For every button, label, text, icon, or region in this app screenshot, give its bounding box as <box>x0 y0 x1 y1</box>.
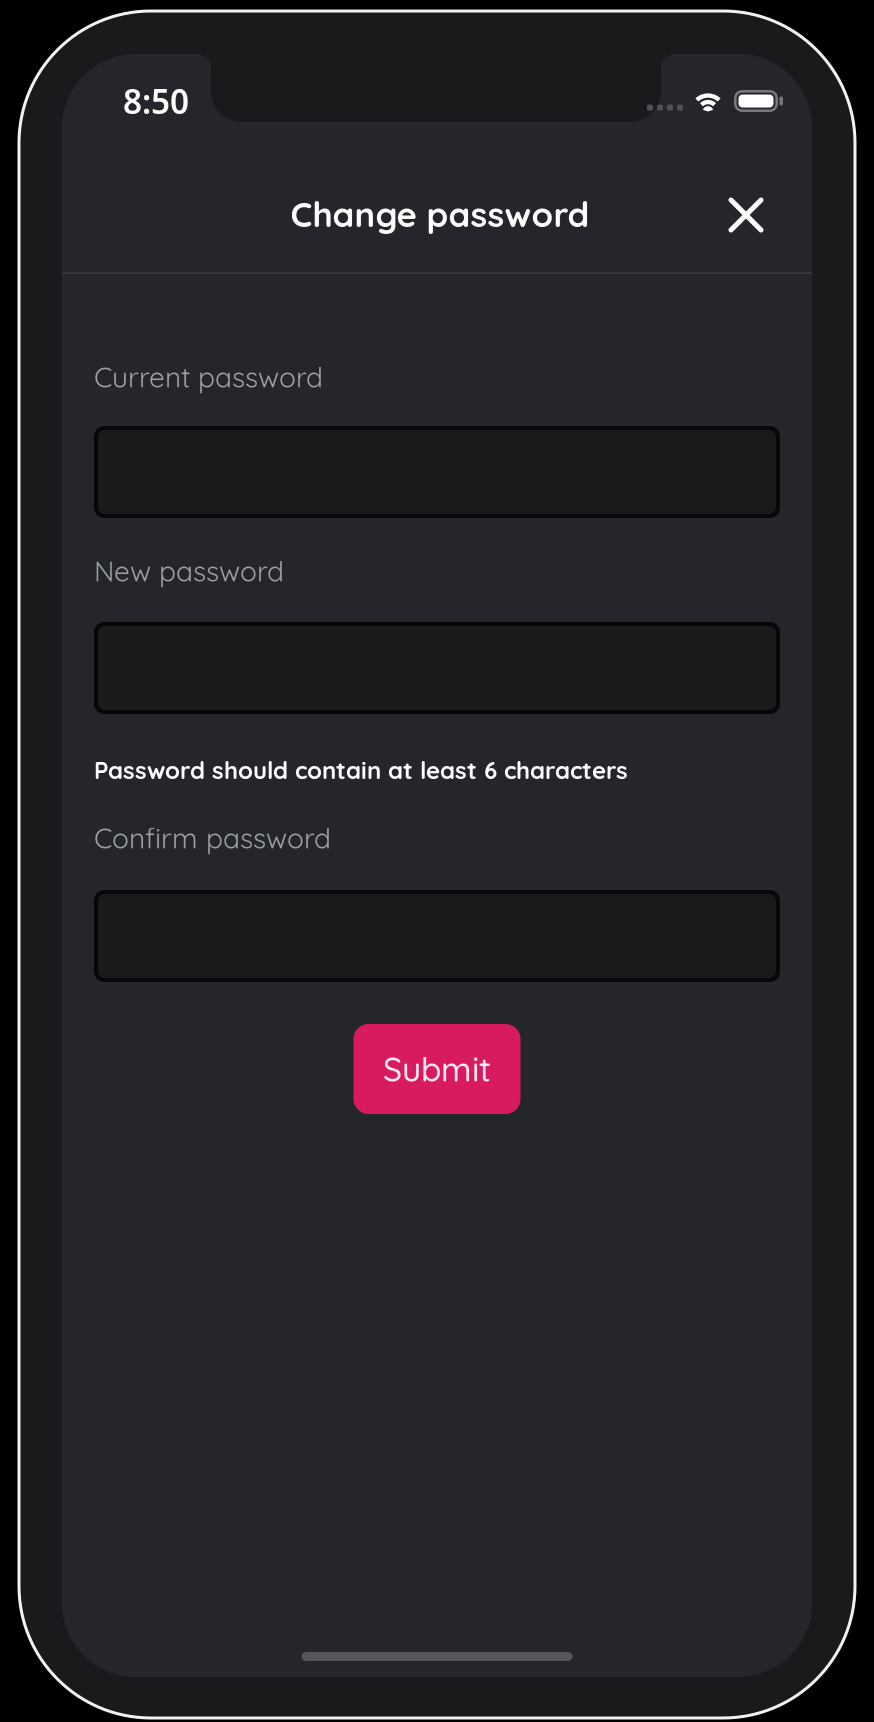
staticText: 8:50 <box>123 79 189 123</box>
staticText: Change password <box>290 192 589 236</box>
button[interactable]: Submit <box>353 1024 520 1114</box>
staticText: Password should contain at least 6 chara… <box>94 755 628 785</box>
staticText: New password <box>94 553 284 588</box>
staticText: Submit <box>383 1048 491 1090</box>
staticText: Current password <box>94 359 323 394</box>
button[interactable]: Close <box>704 170 788 254</box>
staticText: Confirm password <box>94 820 331 855</box>
